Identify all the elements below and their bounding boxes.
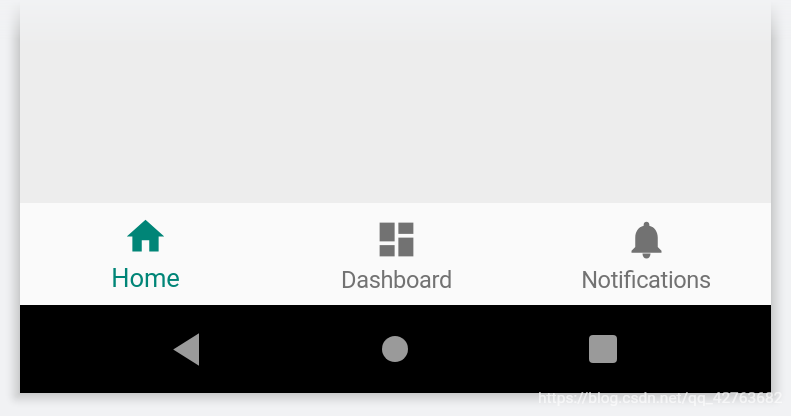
button[interactable]: Home: [20, 203, 271, 305]
staticText: Dashboard: [341, 266, 452, 294]
staticText: Home: [111, 263, 180, 293]
button[interactable]: Recent apps: [555, 305, 651, 393]
button[interactable]: Back: [138, 305, 234, 393]
button[interactable]: Home: [347, 305, 443, 393]
staticText: https://blog.csdn.net/qq_42763682: [538, 389, 783, 407]
staticText: Notifications: [581, 266, 711, 294]
button[interactable]: Dashboard: [271, 203, 521, 305]
button[interactable]: Notifications: [521, 203, 771, 305]
